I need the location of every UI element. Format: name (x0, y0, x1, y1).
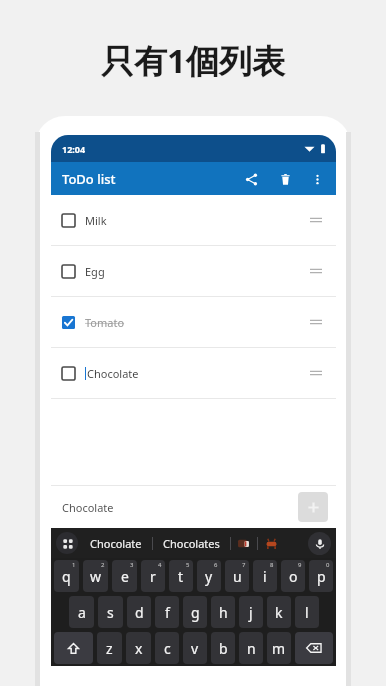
staticText: Chocolate (87, 366, 139, 381)
button[interactable]: j (239, 596, 263, 628)
button[interactable]: i (253, 560, 277, 592)
button[interactable]: Chocolate (86, 536, 146, 551)
button[interactable]: e (112, 560, 137, 592)
staticText: Tomato (85, 315, 125, 330)
button[interactable]: Emoji (237, 537, 250, 550)
staticText: w (90, 567, 102, 586)
button[interactable]: Keyboard options (56, 532, 78, 554)
button[interactable]: y (197, 560, 221, 592)
button[interactable]: h (211, 596, 235, 628)
staticText: u (233, 567, 242, 586)
button[interactable]: Delete (271, 165, 299, 193)
button[interactable]: Milk (51, 195, 336, 246)
button[interactable]: More options (303, 165, 331, 193)
button[interactable]: b (211, 632, 235, 664)
staticText: Chocolate (62, 500, 114, 515)
staticText: h (219, 603, 228, 622)
staticText: g (191, 603, 200, 622)
staticText: z (106, 639, 113, 658)
staticText: t (178, 567, 184, 586)
staticText: 7 (242, 561, 246, 569)
staticText: n (247, 639, 256, 658)
staticText: 3 (130, 561, 134, 569)
staticText: m (272, 639, 286, 658)
button[interactable]: m (267, 632, 291, 664)
staticText: l (305, 603, 309, 622)
staticText: Chocolate (90, 536, 142, 551)
staticText: e (121, 567, 129, 586)
button[interactable]: z (97, 632, 122, 664)
staticText: c (164, 639, 171, 658)
staticText: Milk (85, 213, 107, 228)
staticText: o (289, 567, 298, 586)
staticText: y (205, 567, 213, 586)
button[interactable]: l (295, 596, 319, 628)
button[interactable]: Chocolates (159, 536, 224, 551)
staticText: 0 (326, 561, 330, 569)
staticText: 1 (72, 561, 76, 569)
staticText: i (263, 567, 267, 586)
staticText: 5 (186, 561, 190, 569)
button[interactable]: x (126, 632, 151, 664)
staticText: r (150, 567, 156, 586)
button[interactable]: p (309, 560, 333, 592)
staticText: 12:04 (62, 143, 86, 155)
button[interactable]: f (155, 596, 179, 628)
button[interactable]: d (127, 596, 151, 628)
staticText: Egg (85, 264, 105, 279)
button[interactable]: t (169, 560, 193, 592)
button[interactable]: k (267, 596, 291, 628)
staticText: 2 (101, 561, 105, 569)
button[interactable]: r (141, 560, 165, 592)
button[interactable]: n (239, 632, 263, 664)
button[interactable]: u (225, 560, 249, 592)
staticText: b (219, 639, 228, 658)
button[interactable]: Share (237, 165, 265, 193)
button[interactable]: o (281, 560, 305, 592)
staticText: p (317, 567, 326, 586)
button[interactable]: q (54, 560, 79, 592)
staticText: 8 (270, 561, 274, 569)
button[interactable]: a (69, 596, 94, 628)
staticText: Chocolates (163, 536, 220, 551)
button[interactable]: Voice input (308, 532, 331, 555)
staticText: x (135, 639, 143, 658)
staticText: j (249, 603, 253, 622)
staticText: f (165, 603, 170, 622)
button[interactable]: g (183, 596, 207, 628)
button[interactable]: c (155, 632, 179, 664)
button[interactable]: Shift (54, 632, 93, 664)
button[interactable]: v (183, 632, 207, 664)
button[interactable]: Backspace (295, 632, 333, 664)
staticText: k (275, 603, 283, 622)
button[interactable]: Egg (51, 246, 336, 297)
button[interactable]: Add item (298, 492, 328, 522)
staticText: ToDo list (62, 170, 116, 188)
button[interactable]: s (98, 596, 123, 628)
staticText: s (107, 603, 114, 622)
button[interactable]: Sticker (265, 537, 278, 550)
staticText: 6 (214, 561, 218, 569)
staticText: d (135, 603, 144, 622)
staticText: a (78, 603, 86, 622)
staticText: 4 (158, 561, 162, 569)
staticText: 9 (298, 561, 302, 569)
staticText: v (191, 639, 199, 658)
staticText: q (62, 567, 71, 586)
button[interactable]: w (83, 560, 108, 592)
button[interactable]: Chocolate (51, 348, 336, 399)
button[interactable]: Tomato (51, 297, 336, 348)
staticText: 只有1個列表 (101, 38, 285, 83)
